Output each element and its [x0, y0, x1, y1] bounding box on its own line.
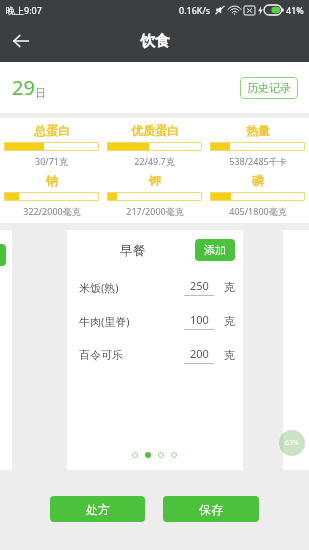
- staticText: 200: [190, 346, 209, 361]
- staticText: 250: [190, 278, 209, 293]
- staticText: 米饭(熟): [79, 280, 119, 295]
- staticText: 克: [224, 314, 235, 328]
- staticText: 牛肉(里脊): [79, 314, 130, 329]
- staticText: 0.16K/s: [179, 4, 211, 16]
- staticText: 克: [224, 280, 235, 294]
- button[interactable]: 总蛋白: [0, 123, 103, 167]
- staticText: 热量: [246, 123, 270, 138]
- staticText: 30/71克: [35, 155, 68, 167]
- staticText: 217/2000毫克: [126, 205, 184, 217]
- button[interactable]: 钾: [103, 173, 206, 217]
- button[interactable]: 处方: [50, 496, 145, 522]
- button[interactable]: 优质蛋白: [103, 123, 206, 167]
- staticText: 63%: [285, 438, 299, 448]
- button[interactable]: 添加: [195, 239, 235, 261]
- staticText: 磷: [252, 173, 264, 188]
- staticText: 22/49.7克: [134, 155, 175, 167]
- staticText: 饮食: [140, 32, 170, 51]
- button[interactable]: 钠: [0, 173, 103, 217]
- button[interactable]: Back: [0, 20, 42, 62]
- button[interactable]: 添加: [0, 244, 6, 266]
- staticText: 322/2000毫克: [23, 205, 81, 217]
- staticText: 100: [190, 312, 209, 327]
- staticText: 添加: [204, 243, 226, 257]
- staticText: 538/2485千卡: [229, 155, 287, 167]
- button[interactable]: 保存: [163, 496, 259, 522]
- staticText: 钾: [149, 173, 161, 188]
- staticText: 保存: [199, 502, 223, 517]
- button[interactable]: 磷: [206, 173, 309, 217]
- staticText: 日: [35, 86, 46, 100]
- staticText: 总蛋白: [34, 123, 70, 138]
- staticText: 克: [224, 348, 235, 362]
- button[interactable]: 米饭(熟): [67, 270, 243, 304]
- staticText: 处方: [86, 502, 110, 517]
- staticText: 早餐: [120, 242, 146, 258]
- staticText: 405/1800毫克: [229, 205, 287, 217]
- staticText: 优质蛋白: [131, 123, 179, 138]
- staticText: 钠: [46, 173, 58, 188]
- staticText: 29: [12, 74, 35, 101]
- button[interactable]: Progress 63 percent: [279, 430, 305, 456]
- button[interactable]: 历史记录: [240, 77, 298, 99]
- button[interactable]: 百令可乐: [67, 338, 243, 372]
- button[interactable]: 牛肉(里脊): [67, 304, 243, 338]
- staticText: 历史记录: [247, 81, 291, 95]
- staticText: 晚上9:07: [6, 4, 42, 16]
- staticText: 41%: [286, 4, 304, 16]
- staticText: 百令可乐: [79, 348, 123, 362]
- button[interactable]: 热量: [206, 123, 309, 167]
